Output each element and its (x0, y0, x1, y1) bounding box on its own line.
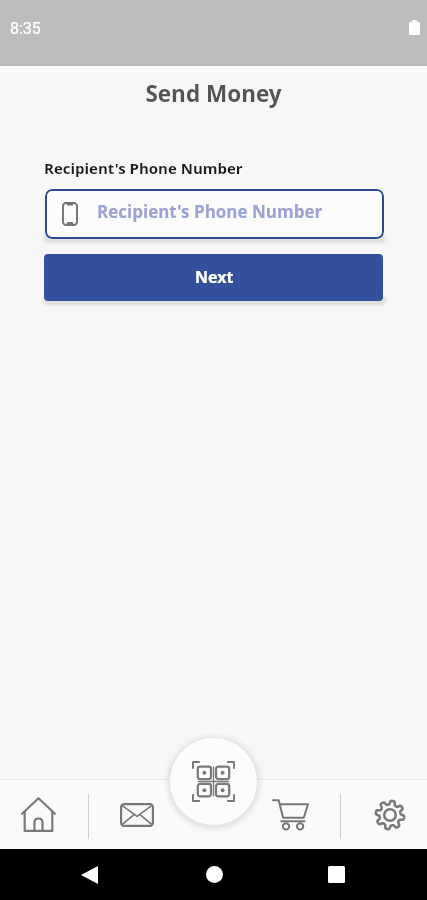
button[interactable]: Next (44, 254, 383, 301)
button[interactable]: Home (9, 783, 68, 846)
button[interactable]: Scan QR code (170, 738, 257, 825)
button[interactable]: Recipient's Phone Number (45, 189, 384, 239)
staticText: 8:35 (10, 19, 41, 38)
staticText: Recipient's Phone Number (44, 158, 243, 178)
button[interactable]: Cart (260, 784, 321, 845)
staticText: Recipient's Phone Number (97, 200, 323, 223)
staticText: Next (195, 266, 234, 288)
button[interactable]: Settings (361, 784, 419, 846)
button[interactable]: Messages (108, 789, 166, 841)
staticText: Send Money (145, 78, 282, 109)
